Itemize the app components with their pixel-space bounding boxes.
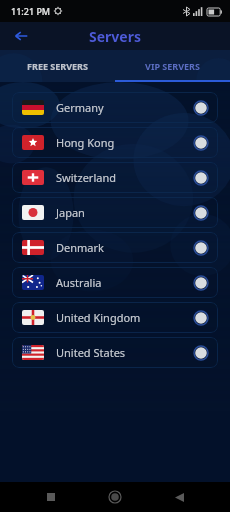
staticText: Australia xyxy=(56,275,102,290)
staticText: Hong Kong xyxy=(56,135,115,150)
staticText: United Kingdom xyxy=(56,310,141,325)
button[interactable]: United Kingdom xyxy=(12,302,218,333)
button[interactable]: Switzerland xyxy=(12,162,218,193)
staticText: VIP SERVERS xyxy=(145,60,200,72)
staticText: Denmark xyxy=(56,240,104,255)
button[interactable]: Australia xyxy=(12,267,218,298)
button[interactable]: Hong Kong xyxy=(12,127,218,158)
button[interactable]: Back xyxy=(166,484,192,510)
button[interactable]: FREE SERVERS xyxy=(0,50,115,82)
staticText: Japan xyxy=(56,205,85,220)
button[interactable]: Japan xyxy=(12,197,218,228)
staticText: Servers xyxy=(89,27,141,46)
staticText: FREE SERVERS xyxy=(27,60,88,72)
staticText: United States xyxy=(56,345,126,360)
button[interactable]: VIP SERVERS xyxy=(115,50,230,82)
staticText: Germany xyxy=(56,100,104,115)
staticText: 11:21 PM xyxy=(11,5,51,17)
button[interactable]: Denmark xyxy=(12,232,218,263)
button[interactable]: Germany xyxy=(12,92,218,123)
button[interactable]: United States xyxy=(12,337,218,368)
staticText: Switzerland xyxy=(56,170,116,185)
button[interactable]: Home xyxy=(102,484,128,510)
button[interactable]: Recents xyxy=(38,484,64,510)
button[interactable]: Back xyxy=(8,23,34,49)
